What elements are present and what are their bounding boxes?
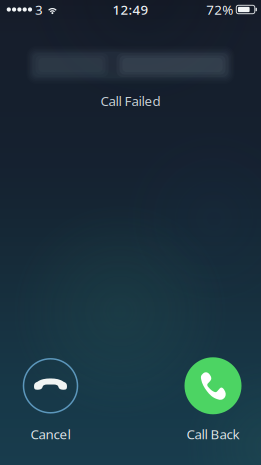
button[interactable]: Call Back <box>165 355 261 445</box>
staticText: Call Failed <box>100 92 160 110</box>
staticText: 12:49 <box>112 1 148 18</box>
staticText: 72% <box>206 1 233 18</box>
staticText: Call Back <box>186 425 239 443</box>
staticText: 3 <box>35 1 43 18</box>
button[interactable]: Cancel <box>2 355 98 445</box>
staticText: Cancel <box>30 425 70 443</box>
